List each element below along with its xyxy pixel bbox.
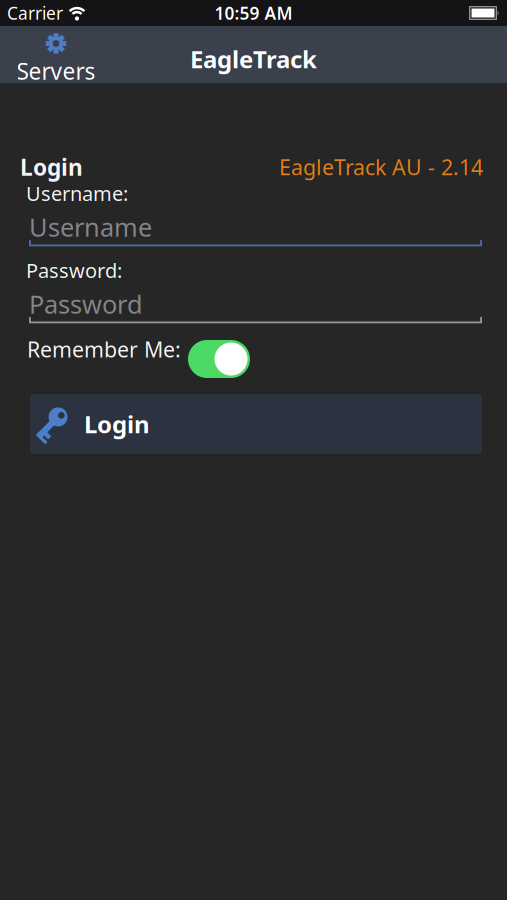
staticText: Servers [16,56,95,86]
staticText: EagleTrack [190,43,317,75]
staticText: Username: [26,180,128,207]
staticText: EagleTrack AU - 2.14 [279,153,483,181]
staticText: Carrier [7,1,63,24]
button[interactable]: Login [30,394,482,454]
staticText: Login [84,408,150,440]
staticText: Password: [26,257,122,284]
button[interactable]: Servers [0,33,112,86]
button[interactable]: Password [29,287,482,324]
button[interactable]: Username [29,210,482,247]
staticText: Login [20,152,83,182]
button[interactable]: Remember Me [188,340,250,378]
staticText: Remember Me: [27,335,181,363]
staticText: Password [29,287,143,321]
staticText: 10:59 AM [214,1,292,24]
staticText: Username [29,210,152,244]
